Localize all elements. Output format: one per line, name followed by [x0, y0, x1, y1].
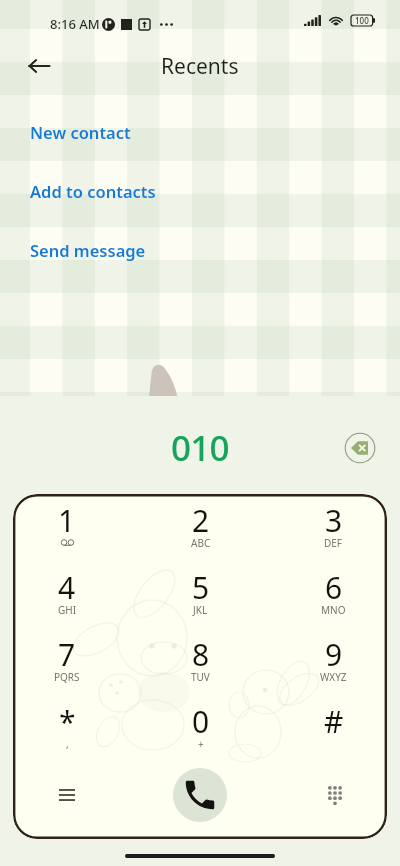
- button[interactable]: 8: [134, 628, 267, 695]
- staticText: Recents: [161, 52, 239, 81]
- staticText: 8:16 AM: [50, 15, 100, 33]
- button[interactable]: 6: [267, 561, 400, 628]
- staticText: 6: [325, 567, 343, 608]
- staticText: GHI: [58, 603, 77, 617]
- button[interactable]: Backspace: [342, 430, 377, 465]
- button[interactable]: New contact: [0, 102, 400, 161]
- button[interactable]: 5: [134, 561, 267, 628]
- staticText: WXYZ: [320, 670, 347, 684]
- staticText: Add to contacts: [30, 180, 156, 202]
- button[interactable]: More options: [47, 775, 87, 815]
- staticText: 3: [325, 500, 343, 541]
- button[interactable]: 2: [134, 494, 267, 561]
- staticText: 7: [58, 634, 76, 675]
- staticText: 2: [192, 500, 210, 541]
- staticText: 010: [171, 424, 229, 472]
- staticText: ,: [66, 737, 69, 751]
- button[interactable]: 7: [0, 628, 134, 695]
- staticText: MNO: [321, 603, 346, 617]
- staticText: #: [324, 701, 344, 742]
- staticText: 100: [355, 15, 369, 26]
- staticText: 8: [192, 634, 210, 675]
- staticText: 4: [58, 567, 76, 608]
- button[interactable]: Back: [20, 47, 57, 84]
- staticText: 9: [325, 634, 343, 675]
- staticText: TUV: [191, 670, 210, 684]
- staticText: +: [198, 737, 204, 751]
- staticText: Send message: [30, 239, 146, 261]
- button[interactable]: Send message: [0, 220, 400, 279]
- staticText: 1: [58, 500, 76, 541]
- staticText: *: [59, 701, 76, 742]
- button[interactable]: 0: [134, 695, 267, 762]
- button[interactable]: 4: [0, 561, 134, 628]
- staticText: New contact: [30, 121, 131, 143]
- staticText: 0: [192, 701, 210, 742]
- button[interactable]: Add to contacts: [0, 161, 400, 220]
- button[interactable]: 3: [267, 494, 400, 561]
- button[interactable]: Call: [173, 768, 227, 822]
- staticText: JKL: [193, 603, 208, 617]
- button[interactable]: 9: [267, 628, 400, 695]
- button[interactable]: #: [267, 695, 400, 762]
- staticText: PQRS: [54, 670, 80, 684]
- button[interactable]: Dialpad: [315, 775, 355, 815]
- button[interactable]: 1: [0, 494, 134, 561]
- staticText: 5: [192, 567, 210, 608]
- staticText: DEF: [324, 536, 343, 550]
- button[interactable]: *: [0, 695, 134, 762]
- staticText: ABC: [191, 536, 211, 550]
